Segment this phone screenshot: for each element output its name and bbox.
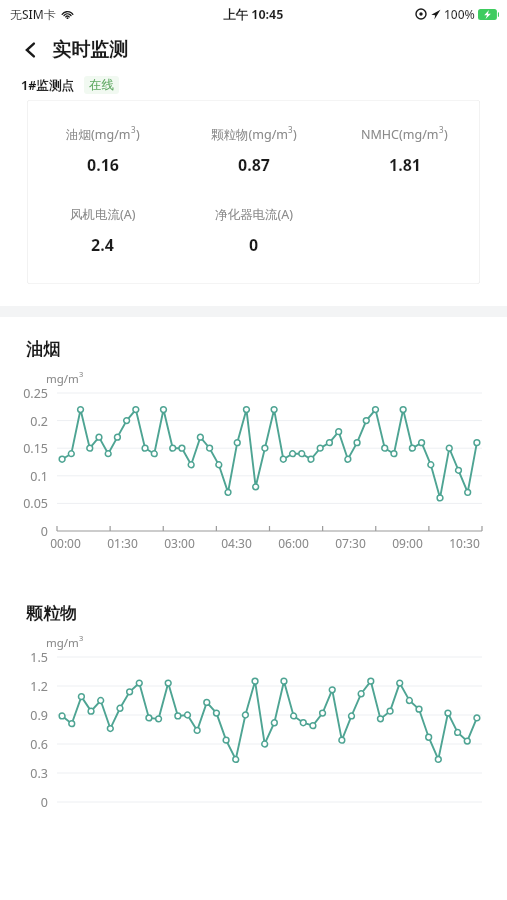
button[interactable]: Back — [16, 35, 46, 65]
staticText: 0.05 — [0, 495, 48, 512]
staticText: 0.16 — [87, 154, 119, 176]
staticText: 100% — [444, 6, 475, 22]
staticText: 01:30 — [94, 535, 151, 551]
staticText: ) — [293, 126, 297, 143]
staticText: 在线 — [89, 77, 114, 93]
staticText: 09:00 — [379, 535, 436, 551]
staticText: 0.3 — [0, 765, 48, 782]
staticText: mg/m — [46, 371, 79, 387]
staticText: 3 — [288, 124, 293, 135]
staticText: 2.4 — [91, 234, 114, 256]
staticText: 油烟(mg/m — [66, 126, 131, 143]
staticText: 0.1 — [0, 468, 48, 485]
staticText: 0.15 — [0, 440, 48, 457]
staticText: 0.9 — [0, 707, 48, 724]
staticText: 1#监测点 — [21, 77, 74, 94]
staticText: 油烟 — [26, 339, 60, 360]
staticText: 净化器电流(A) — [215, 206, 293, 223]
staticText: 1.81 — [389, 154, 421, 176]
staticText: 1.2 — [0, 678, 48, 695]
staticText: 实时监测 — [52, 38, 128, 62]
staticText: mg/m — [46, 635, 79, 651]
staticText: 3 — [79, 633, 84, 643]
staticText: NMHC(mg/m — [361, 126, 439, 143]
staticText: 0.6 — [0, 736, 48, 753]
staticText: 0 — [0, 794, 48, 811]
button[interactable]: 在线 — [84, 76, 119, 94]
staticText: 10:30 — [436, 535, 493, 551]
staticText: 0.25 — [0, 385, 48, 402]
staticText: 颗粒物(mg/m — [211, 126, 288, 143]
staticText: 07:30 — [322, 535, 379, 551]
staticText: 0 — [249, 234, 259, 256]
staticText: 0.87 — [238, 154, 270, 176]
staticText: 03:00 — [151, 535, 208, 551]
staticText: 00:00 — [37, 535, 94, 551]
staticText: 04:30 — [208, 535, 265, 551]
staticText: 0 — [0, 523, 48, 540]
staticText: 风机电流(A) — [70, 206, 136, 223]
staticText: 0.2 — [0, 413, 48, 430]
staticText: 06:00 — [265, 535, 322, 551]
staticText: 颗粒物 — [26, 603, 77, 624]
staticText: ) — [136, 126, 140, 143]
staticText: 3 — [79, 369, 84, 379]
staticText: ) — [444, 126, 448, 143]
staticText: 3 — [131, 124, 136, 135]
staticText: 上午 10:45 — [223, 6, 284, 23]
staticText: 1.5 — [0, 649, 48, 666]
staticText: 无SIM卡 — [10, 6, 56, 22]
staticText: 3 — [439, 124, 444, 135]
